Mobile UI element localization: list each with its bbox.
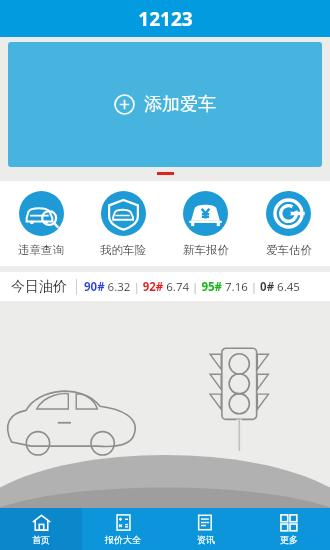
staticText: 更多 [280, 534, 298, 545]
button[interactable]: 我的车险 [82, 181, 164, 266]
button[interactable]: 爱车估价 [247, 181, 330, 266]
button[interactable]: 资讯 [164, 508, 247, 550]
staticText: 12123 [138, 6, 193, 32]
staticText: 违章查询 [18, 243, 64, 257]
staticText: 添加爱车 [144, 93, 216, 116]
staticText: 90# 6.32 | 92# 6.74 | 95# 7.16 | 0# 6.45 [84, 279, 300, 295]
staticText: 今日油价 [11, 278, 67, 296]
button[interactable]: 首页 [0, 508, 82, 550]
button[interactable]: 今日油价 [0, 272, 330, 301]
staticText: 我的车险 [100, 243, 146, 257]
button[interactable]: 违章查询 [0, 181, 82, 266]
staticText: 报价大全 [105, 534, 141, 545]
button[interactable]: 报价大全 [82, 508, 164, 550]
staticText: 首页 [32, 534, 50, 545]
staticText: 新车报价 [183, 243, 229, 257]
staticText: 资讯 [197, 534, 215, 545]
button[interactable]: 新车报价 [164, 181, 247, 266]
button[interactable]: 更多 [247, 508, 330, 550]
button[interactable]: 添加爱车 [8, 42, 322, 167]
staticText: 爱车估价 [266, 243, 312, 257]
